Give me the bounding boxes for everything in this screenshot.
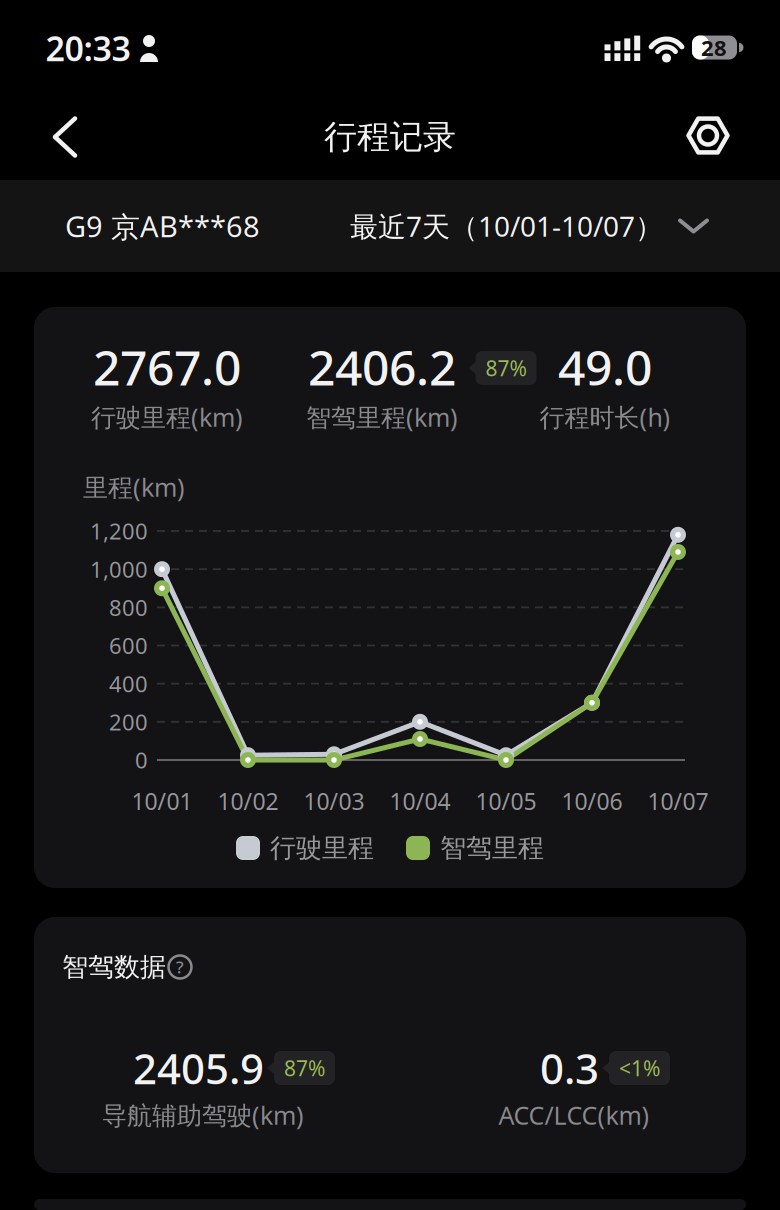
staticText: 10/05 [475,786,536,816]
staticText: 200 [109,707,148,736]
staticText: 400 [109,669,148,698]
button[interactable]: Settings [686,113,730,157]
staticText: 智驾数据 [62,951,166,983]
staticText: 10/01 [131,786,192,816]
staticText: 0.3 [540,1040,599,1096]
staticText: 600 [109,631,148,660]
staticText: 2767.0 [93,335,241,399]
staticText: 行驶里程(km) [91,400,243,434]
staticText: 1,000 [90,555,148,584]
staticText: 2406.2 [308,335,456,399]
button[interactable]: G9 京AB***68 [65,207,260,245]
staticText: 行程时长(h) [539,400,670,434]
button[interactable]: Back [51,114,81,159]
staticText: ACC/LCC(km) [498,1098,649,1132]
button[interactable]: 智驾数据说明 [168,955,192,979]
staticText: <1% [619,1054,660,1082]
staticText: 行程记录 [324,117,456,157]
staticText: 最近7天（10/01-10/07） [350,207,663,245]
staticText: 10/07 [647,786,708,816]
staticText: 87% [485,354,526,382]
button[interactable]: 最近7天（10/01-10/07） [350,207,709,245]
staticText: 87% [284,1054,325,1082]
staticText: 导航辅助驾驶(km) [102,1098,304,1132]
staticText: 智驾里程(km) [306,400,458,434]
staticText: 28 [701,33,727,62]
staticText: 10/04 [389,786,450,816]
staticText: 10/06 [561,786,622,816]
staticText: 1,200 [90,516,148,546]
staticText: 行驶里程 [270,832,374,864]
staticText: 2405.9 [133,1040,264,1096]
staticText: 49.0 [558,335,652,399]
staticText: 10/02 [217,786,278,816]
staticText: 0 [135,745,148,775]
staticText: 里程(km) [83,470,185,504]
staticText: ? [176,956,184,978]
staticText: 智驾里程 [440,832,544,864]
staticText: 800 [109,593,148,622]
staticText: 10/03 [303,786,364,816]
staticText: 20:33 [45,25,130,71]
staticText: G9 京AB***68 [65,207,260,245]
